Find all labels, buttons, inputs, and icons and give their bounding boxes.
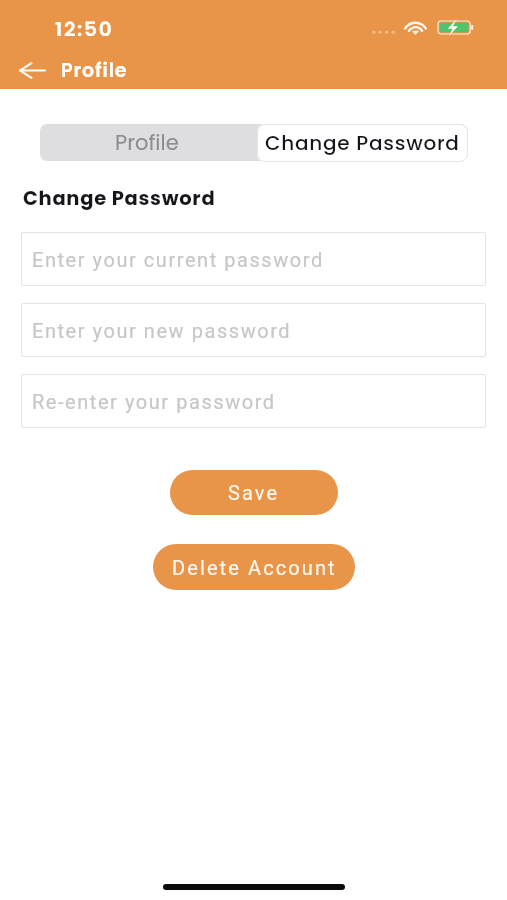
button[interactable]: Back — [15, 53, 49, 87]
staticText: Change Password — [23, 185, 216, 212]
staticText: Enter your current password — [32, 248, 324, 271]
button[interactable]: Enter your new password — [21, 303, 486, 357]
button[interactable]: Re-enter your password — [21, 374, 486, 428]
staticText: Enter your new password — [32, 319, 292, 342]
staticText: 12:50 — [55, 15, 114, 43]
button[interactable]: Enter your current password — [21, 232, 486, 286]
button[interactable]: Change Password — [257, 124, 468, 162]
button[interactable]: Profile — [40, 124, 254, 161]
staticText: Profile — [115, 128, 179, 157]
staticText: Change Password — [265, 129, 460, 157]
staticText: Profile — [61, 57, 128, 84]
button[interactable]: Delete Account — [153, 544, 355, 590]
button[interactable]: Save — [170, 470, 338, 515]
staticText: Delete Account — [172, 556, 337, 579]
staticText: Re-enter your password — [32, 390, 276, 413]
staticText: Save — [228, 481, 280, 504]
